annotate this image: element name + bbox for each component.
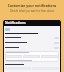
button[interactable]: Notifications [4,20,60,26]
staticText: Notifications [5,21,26,25]
button[interactable] [5,46,59,49]
button[interactable] [5,41,59,44]
staticText: Customize your notifications [0,3,64,8]
button[interactable] [5,36,59,39]
button[interactable] [23,55,40,58]
staticText: Decide what you want to hear about [0,9,64,13]
button[interactable]: Filter [5,28,10,31]
button[interactable] [6,55,22,58]
button[interactable] [41,55,58,58]
